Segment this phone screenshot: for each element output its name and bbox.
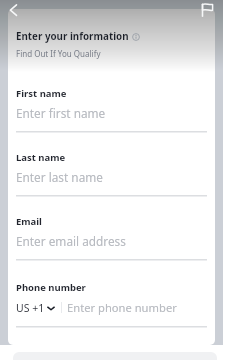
staticText: Find Out If You Qualify [16,48,101,59]
staticText: Last name [16,151,66,164]
button[interactable]: Flag [194,0,218,24]
staticText: US +1 [16,301,45,315]
button[interactable]: Back [1,0,25,24]
staticText: Enter your information [16,30,129,43]
staticText: Enter email address [16,233,126,249]
staticText: Enter first name [16,105,106,121]
staticText: Phone number [16,281,86,294]
staticText: First name [16,87,67,100]
staticText: Email [16,215,42,228]
staticText: Enter last name [16,169,103,185]
button[interactable]: US +1 [16,301,55,315]
staticText: Enter phone number [67,300,177,315]
